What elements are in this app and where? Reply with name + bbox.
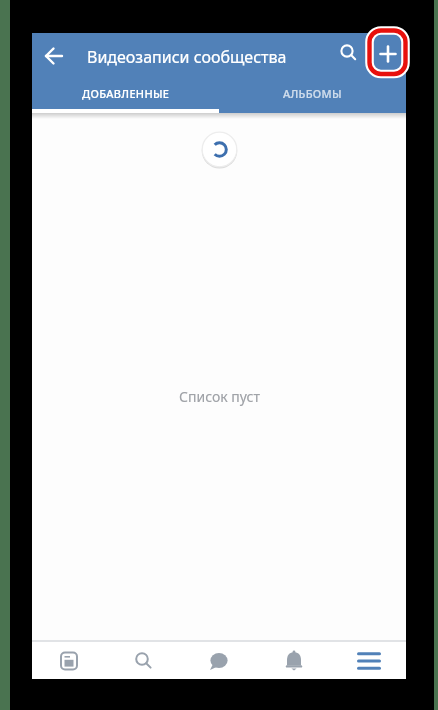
staticText: Список пуст xyxy=(179,387,260,406)
button[interactable] xyxy=(371,37,404,70)
staticText: ДОБАВЛЕННЫЕ xyxy=(82,86,170,101)
button[interactable] xyxy=(106,642,181,679)
button[interactable] xyxy=(256,642,331,679)
button[interactable]: ДОБАВЛЕННЫЕ xyxy=(32,80,219,113)
staticText: АЛЬБОМЫ xyxy=(283,86,342,101)
button[interactable] xyxy=(38,40,70,72)
button[interactable] xyxy=(331,642,406,679)
staticText: Видеозаписи сообщества xyxy=(87,46,287,68)
button[interactable] xyxy=(333,37,365,69)
button[interactable]: АЛЬБОМЫ xyxy=(219,80,406,113)
button[interactable] xyxy=(32,642,106,679)
button[interactable] xyxy=(181,642,256,679)
